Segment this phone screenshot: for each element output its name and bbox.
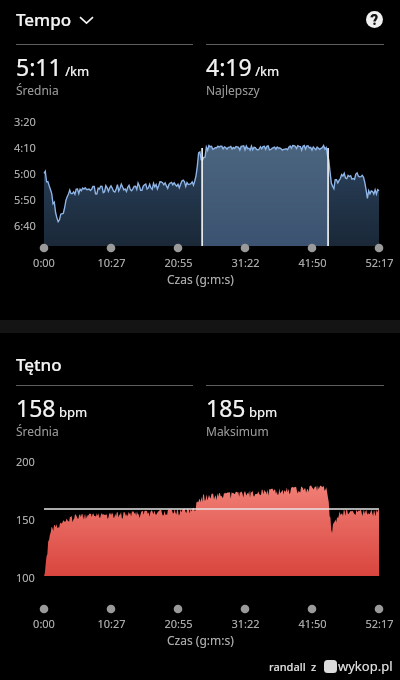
staticText: 4:10 [14,140,36,155]
staticText: 31:22 [231,616,260,631]
staticText: z [311,659,317,674]
staticText: 31:22 [231,255,260,270]
staticText: 20:55 [164,616,193,631]
button[interactable]: 5:11 /km [16,44,193,98]
staticText: 200 [16,454,35,469]
staticText: 5:11 /km [16,51,90,82]
staticText: 158 bpm [16,392,88,423]
staticText: 20:55 [164,255,193,270]
staticText: Tempo [16,8,72,31]
staticText: wykop.pl [338,657,393,675]
staticText: Czas (g:m:s) [167,632,234,648]
staticText: 41:50 [298,255,327,270]
button[interactable]: 185 bpm [206,385,384,439]
staticText: 4:19 /km [206,51,280,82]
staticText: Czas (g:m:s) [167,271,234,287]
staticText: randall [269,659,306,674]
staticText: 0:00 [33,616,55,631]
staticText: 52:17 [365,255,394,270]
staticText: Tętno [16,353,62,376]
button[interactable]: Help [359,4,389,34]
button[interactable]: 4:19 /km [206,44,384,98]
staticText: 0:00 [33,255,55,270]
staticText: 100 [16,570,35,585]
staticText: 5:00 [14,166,36,181]
button[interactable]: Tętno [14,349,64,380]
staticText: 52:17 [365,616,394,631]
staticText: 3:20 [14,114,36,129]
staticText: 6:40 [14,218,36,233]
staticText: Najlepszy [206,82,260,98]
staticText: 150 [16,512,35,527]
staticText: 10:27 [97,255,126,270]
button[interactable]: Tempo [14,3,95,36]
staticText: Średnia [16,82,59,98]
staticText: Maksimum [206,423,269,439]
staticText: Średnia [16,423,59,439]
staticText: 41:50 [298,616,327,631]
button[interactable]: 158 bpm [16,385,193,439]
staticText: 185 bpm [206,392,278,423]
staticText: 10:27 [97,616,126,631]
staticText: 5:50 [14,192,36,207]
